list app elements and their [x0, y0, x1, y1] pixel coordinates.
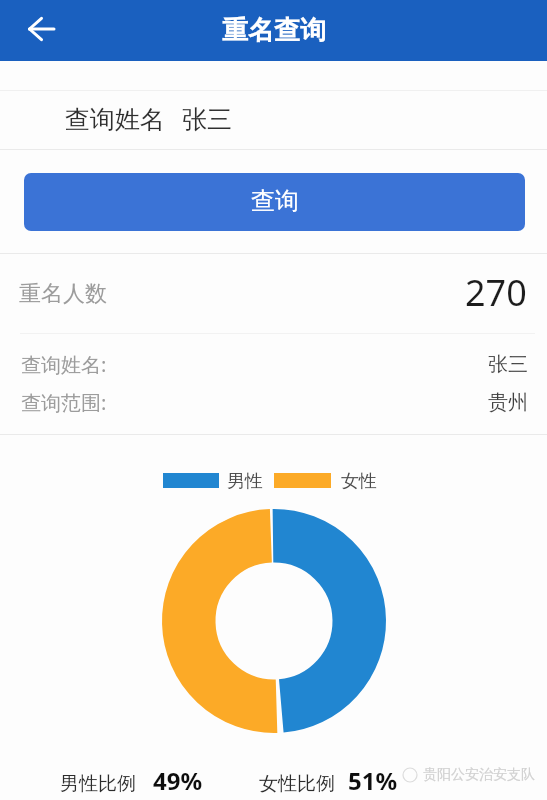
staticText: 贵州	[488, 390, 528, 415]
staticText: 男性比例	[60, 772, 136, 796]
staticText: 重名查询	[222, 14, 326, 47]
staticText: 张三	[182, 104, 232, 135]
staticText: 男性	[227, 470, 263, 493]
staticText: 270	[465, 268, 527, 317]
staticText: 重名人数	[19, 280, 107, 308]
staticText: 查询	[251, 186, 299, 216]
staticText: 女性	[341, 470, 377, 493]
button[interactable]: Back	[15, 3, 67, 55]
staticText: 查询姓名	[65, 104, 165, 135]
staticText: 查询姓名:	[21, 351, 107, 378]
staticText: 49%	[153, 764, 203, 797]
button[interactable]: 查询	[24, 173, 525, 231]
staticText: 查询范围:	[21, 389, 107, 416]
staticText: 51%	[348, 764, 398, 797]
staticText: 张三	[488, 352, 528, 377]
staticText: 女性比例	[259, 772, 335, 796]
button[interactable]: 查询姓名	[0, 61, 547, 148]
staticText: 贵阳公安治安支队	[423, 766, 535, 784]
